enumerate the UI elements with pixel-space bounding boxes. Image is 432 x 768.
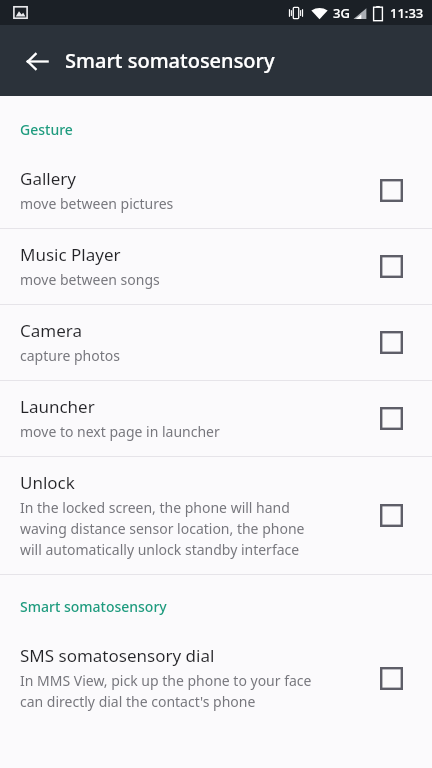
staticText: Unlock bbox=[20, 471, 75, 494]
button[interactable]: Launcher checkbox bbox=[370, 397, 412, 439]
button[interactable]: SMS somatosensory dial bbox=[0, 630, 432, 726]
staticText: Smart somatosensory bbox=[65, 47, 275, 74]
button[interactable]: Music Player bbox=[0, 229, 432, 304]
staticText: Gallery bbox=[20, 167, 76, 190]
staticText: waving distance sensor location, the pho… bbox=[20, 519, 305, 538]
button[interactable]: Camera bbox=[0, 305, 432, 380]
staticText: SMS somatosensory dial bbox=[20, 644, 215, 667]
button[interactable]: Unlock checkbox bbox=[370, 494, 412, 536]
button[interactable]: Launcher bbox=[0, 381, 432, 456]
staticText: In MMS View, pick up the phone to your f… bbox=[20, 671, 312, 690]
staticText: 11:33 bbox=[390, 4, 424, 22]
button[interactable]: Camera checkbox bbox=[370, 321, 412, 363]
staticText: Camera bbox=[20, 319, 82, 342]
staticText: capture photos bbox=[20, 346, 120, 365]
button[interactable]: Back bbox=[14, 38, 60, 84]
button[interactable]: Unlock bbox=[0, 457, 432, 574]
staticText: move between pictures bbox=[20, 194, 174, 213]
staticText: 3G bbox=[333, 4, 350, 22]
staticText: Music Player bbox=[20, 243, 121, 266]
staticText: Gesture bbox=[20, 120, 73, 139]
staticText: In the locked screen, the phone will han… bbox=[20, 498, 290, 517]
staticText: move to next page in launcher bbox=[20, 422, 220, 441]
staticText: Launcher bbox=[20, 395, 95, 418]
button[interactable]: SMS somatosensory dial checkbox bbox=[370, 657, 412, 699]
staticText: will automatically unlock standby interf… bbox=[20, 540, 300, 559]
button[interactable]: Gallery checkbox bbox=[370, 169, 412, 211]
staticText: Smart somatosensory bbox=[20, 597, 167, 616]
button[interactable]: Gallery bbox=[0, 153, 432, 228]
staticText: move between songs bbox=[20, 270, 160, 289]
staticText: can directly dial the contact's phone bbox=[20, 692, 256, 711]
button[interactable]: Music Player checkbox bbox=[370, 245, 412, 287]
